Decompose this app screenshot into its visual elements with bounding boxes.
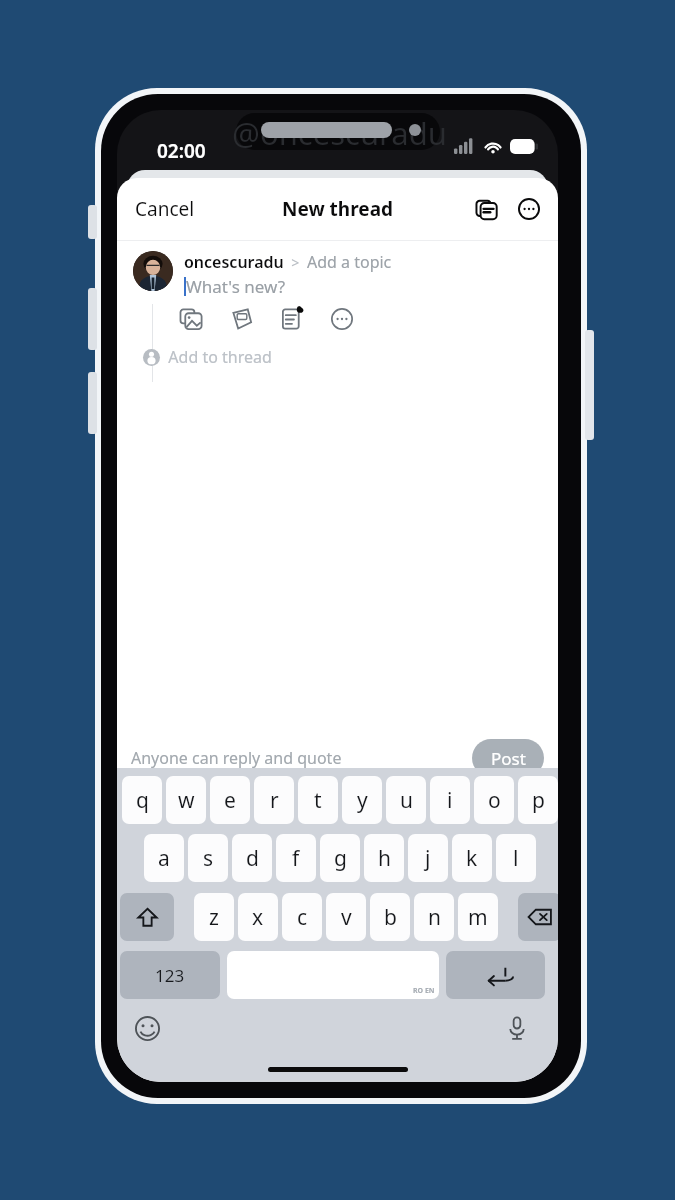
button[interactable]: w [166,776,206,824]
button[interactable]: Emoji [129,1010,165,1046]
staticText: 02:00 [157,138,206,164]
button[interactable]: b [370,893,410,941]
button[interactable]: s [188,834,228,882]
staticText: j [425,844,431,873]
button[interactable]: z [194,893,234,941]
staticText: s [203,844,214,873]
button[interactable]: x [238,893,278,941]
staticText: What's new? [186,275,286,298]
staticText: e [224,786,236,815]
button[interactable]: More options [512,192,546,226]
button[interactable]: RO EN [227,951,439,999]
button[interactable]: h [364,834,404,882]
button[interactable]: e [210,776,250,824]
staticText: i [447,786,453,815]
button[interactable]: o [474,776,514,824]
button[interactable]: k [452,834,492,882]
staticText: g [334,844,347,873]
staticText: 123 [155,964,185,987]
staticText: l [513,844,519,873]
staticText: c [297,903,308,932]
button[interactable]: g [320,834,360,882]
button[interactable]: poll [277,304,307,334]
staticText: > [284,253,307,272]
staticText: n [428,903,441,932]
staticText: w [178,786,195,815]
button[interactable]: i [430,776,470,824]
button[interactable]: Cancel [123,188,207,230]
button[interactable]: p [518,776,558,824]
staticText: f [292,844,300,873]
button[interactable]: Drafts [470,192,504,226]
button[interactable]: c [282,893,322,941]
button[interactable]: photo [177,304,207,334]
staticText: y [357,786,368,815]
staticText: Cancel [135,196,195,222]
staticText: z [209,903,219,932]
staticText: k [466,844,478,873]
button[interactable]: Anyone can reply and quote [131,747,342,769]
button[interactable]: y [342,776,382,824]
staticText: b [384,903,397,932]
button[interactable]: oncescuradu [184,251,284,273]
staticText: v [341,903,352,932]
button[interactable]: more [327,304,357,334]
staticText: o [488,786,501,815]
staticText: p [532,786,545,815]
button[interactable]: f [276,834,316,882]
button[interactable]: Voice input [499,1010,535,1046]
button[interactable]: t [298,776,338,824]
staticText: Post [491,747,526,770]
staticText: @oncescuradu [232,112,447,154]
staticText: q [136,786,149,815]
button[interactable]: key [518,893,558,941]
button[interactable]: gif [227,304,257,334]
staticText: Add to thread [160,346,272,368]
button[interactable]: a [144,834,184,882]
button[interactable]: Post [472,739,544,777]
button[interactable]: Add to thread [143,346,272,368]
button[interactable]: u [386,776,426,824]
button[interactable]: key [120,893,174,941]
staticText: RO EN [413,986,435,996]
button[interactable]: n [414,893,454,941]
button[interactable]: m [458,893,498,941]
staticText: x [252,903,264,932]
button[interactable]: l [496,834,536,882]
button[interactable]: j [408,834,448,882]
button[interactable]: Add a topic [307,251,392,273]
staticText: a [158,844,170,873]
staticText: r [270,786,279,815]
button[interactable] [133,251,173,291]
button[interactable]: Return [446,951,545,999]
staticText: d [246,844,259,873]
staticText: m [468,903,488,932]
staticText: u [400,786,413,815]
button[interactable]: 123 [120,951,220,999]
staticText: New thread [282,196,394,222]
button[interactable]: r [254,776,294,824]
staticText: h [378,844,391,873]
staticText: t [314,786,322,815]
button[interactable]: q [122,776,162,824]
button[interactable]: d [232,834,272,882]
button[interactable]: v [326,893,366,941]
